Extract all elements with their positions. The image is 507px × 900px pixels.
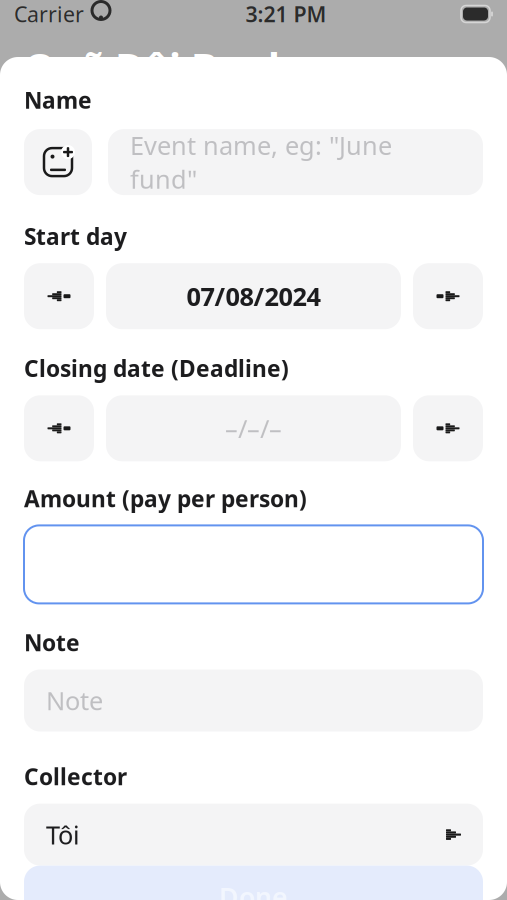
staticText: Collector [24,761,127,792]
staticText: –/–/– [225,411,282,445]
button[interactable]: 07/08/2024 [106,263,401,329]
button[interactable]: Add photo [24,129,92,195]
staticText: Closing date (Deadline) [24,353,289,383]
button[interactable]: Amount [24,525,483,603]
button[interactable]: Previous day [24,263,94,329]
button[interactable]: Event name, eg: "June fund" [108,129,483,195]
staticText: Note [24,627,80,657]
staticText: Quỹ Đội Bạnh [24,40,294,93]
staticText: 3:21 PM [245,0,326,28]
button[interactable]: Next day [413,263,483,329]
button[interactable]: Previous day [24,395,94,461]
staticText: 07/08/2024 [186,279,320,313]
staticText: Start day [24,221,127,251]
staticText: Event name, eg: "June fund" [130,128,392,196]
staticText: Name [24,85,92,115]
staticText: Tôi [46,818,80,851]
staticText: Amount (pay per person) [24,483,307,513]
staticText: Done [219,879,288,900]
staticText: Carrier [14,0,84,28]
button[interactable]: Tôi [24,804,483,866]
button[interactable]: –/–/– [106,395,401,461]
button[interactable]: Note [24,669,483,731]
staticText: Note [46,684,103,717]
button[interactable]: Next day [413,395,483,461]
